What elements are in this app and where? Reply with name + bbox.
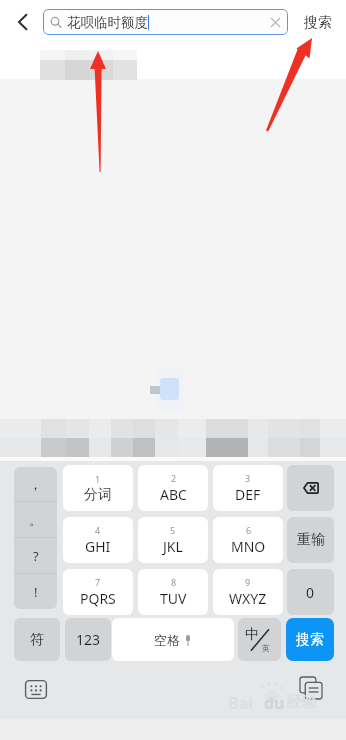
staticText: ! — [34, 583, 38, 601]
staticText: 搜索 — [296, 631, 324, 649]
button[interactable]: ! — [14, 574, 57, 609]
staticText: Bai — [228, 692, 254, 714]
staticText: 8 — [171, 576, 177, 588]
button[interactable]: 搜索 — [286, 618, 334, 661]
staticText: GHI — [85, 537, 111, 556]
button[interactable]: 空格 — [112, 618, 234, 661]
staticText: 123 — [76, 630, 101, 649]
button[interactable]: 搜索 — [296, 0, 340, 46]
button[interactable]: 1 — [63, 465, 133, 511]
button[interactable]: Backspace — [287, 465, 334, 511]
button[interactable]: Back — [4, 0, 40, 44]
staticText: 9 — [245, 576, 251, 588]
button[interactable]: 5 — [138, 517, 208, 563]
staticText: 。 — [29, 512, 42, 528]
staticText: 7 — [95, 576, 101, 588]
staticText: DEF — [235, 485, 261, 504]
button[interactable]: 花呗临时额度 — [43, 9, 288, 35]
staticText: 3 — [245, 472, 251, 484]
button[interactable]: 7 — [63, 569, 133, 615]
button[interactable]: Clipboard — [300, 677, 322, 699]
staticText: JKL — [163, 537, 183, 556]
staticText: 5 — [170, 524, 176, 536]
staticText: 分词 — [84, 486, 112, 504]
staticText: 6 — [246, 524, 252, 536]
staticText: 符 — [30, 631, 44, 649]
button[interactable]: Switch keyboard — [25, 680, 47, 699]
staticText: WXYZ — [229, 589, 267, 608]
button[interactable]: 123 — [65, 618, 111, 661]
staticText: 搜索 — [304, 14, 332, 32]
button[interactable]: 9 — [213, 569, 283, 615]
button[interactable]: 重输 — [287, 517, 334, 563]
button[interactable]: 符 — [14, 618, 60, 661]
staticText: ABC — [160, 485, 187, 504]
button[interactable]: ， — [14, 467, 57, 501]
button[interactable]: 3 — [213, 465, 283, 511]
button[interactable]: ? — [14, 538, 57, 573]
staticText: 0 — [306, 583, 315, 602]
staticText: 经验 — [287, 693, 317, 712]
staticText: 4 — [95, 524, 101, 536]
staticText: 1 — [95, 473, 101, 485]
button[interactable]: 4 — [63, 517, 133, 563]
staticText: TUV — [160, 589, 187, 608]
staticText: 花呗临时额度 — [67, 14, 148, 31]
staticText: ， — [29, 476, 42, 492]
button[interactable]: 。 — [14, 502, 57, 537]
staticText: MNO — [231, 537, 266, 556]
staticText: 2 — [171, 472, 177, 484]
staticText: du — [264, 692, 285, 714]
staticText: 空格 — [154, 632, 180, 648]
button[interactable]: 6 — [213, 517, 283, 563]
staticText: ? — [33, 547, 39, 565]
button[interactable]: 0 — [287, 569, 334, 615]
staticText: 中 — [245, 626, 259, 644]
staticText: 重输 — [297, 531, 325, 549]
staticText: 英 — [262, 643, 270, 653]
button[interactable]: 2 — [138, 465, 208, 511]
button[interactable]: 中 — [238, 618, 281, 661]
button[interactable]: 8 — [138, 569, 208, 615]
button[interactable]: Clear text — [264, 11, 286, 33]
staticText: PQRS — [80, 589, 116, 608]
